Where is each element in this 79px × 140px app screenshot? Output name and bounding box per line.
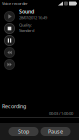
staticText: 28/07/2012 16:49 — [19, 15, 47, 20]
button[interactable]: Fast forward — [4, 59, 15, 70]
staticText: 00:03 / 1:00:00 — [49, 111, 73, 116]
staticText: Voice recorder — [2, 1, 28, 6]
button[interactable]: Play — [4, 11, 15, 22]
button[interactable]: Stop — [4, 23, 15, 34]
staticText: Quality: — [19, 22, 32, 28]
button[interactable]: Pause — [40, 127, 70, 136]
staticText: Sound — [19, 8, 34, 15]
button[interactable]: Stop — [8, 127, 38, 136]
button[interactable]: Rewind — [4, 47, 15, 58]
staticText: Standard — [19, 28, 34, 33]
staticText: Pause — [48, 128, 63, 135]
staticText: Recording — [2, 103, 26, 110]
staticText: Stop — [18, 128, 29, 135]
button[interactable]: Pause — [4, 35, 15, 46]
